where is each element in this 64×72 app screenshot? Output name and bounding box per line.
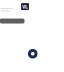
staticText: VL xyxy=(22,3,28,10)
button[interactable]: Chat xyxy=(28,49,37,58)
